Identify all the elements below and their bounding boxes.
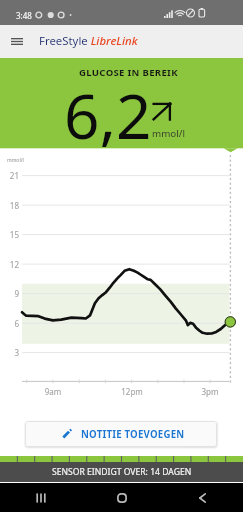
staticText: 3:48 bbox=[16, 10, 32, 21]
staticText: 3 bbox=[3, 347, 19, 358]
staticText: 6 bbox=[3, 318, 19, 329]
button[interactable]: Recent apps bbox=[0, 483, 81, 512]
staticText: GLUCOSE IN BEREIK bbox=[79, 66, 178, 79]
staticText: 6,2 bbox=[64, 73, 152, 157]
button[interactable]: NOTITIE TOEVOEGEN bbox=[25, 421, 217, 447]
button[interactable]: Open navigation menu bbox=[4, 25, 29, 58]
staticText: mmol/l bbox=[7, 157, 24, 164]
staticText: 9 bbox=[3, 288, 19, 299]
button[interactable]: Home bbox=[81, 483, 162, 512]
staticText: FreeStyle LibreLink bbox=[39, 33, 138, 49]
staticText: 12pm bbox=[117, 386, 147, 397]
staticText: 9am bbox=[38, 386, 68, 397]
button[interactable]: Back bbox=[162, 483, 243, 512]
staticText: 3pm bbox=[195, 386, 225, 397]
staticText: 12 bbox=[3, 259, 19, 270]
staticText: mmol/l bbox=[152, 127, 185, 140]
staticText: 15 bbox=[3, 229, 19, 240]
staticText: 18 bbox=[3, 200, 19, 211]
staticText: NOTITIE TOEVOEGEN bbox=[81, 428, 185, 441]
staticText: SENSOR EINDIGT OVER: 14 DAGEN bbox=[52, 466, 192, 478]
staticText: 21 bbox=[3, 170, 19, 181]
